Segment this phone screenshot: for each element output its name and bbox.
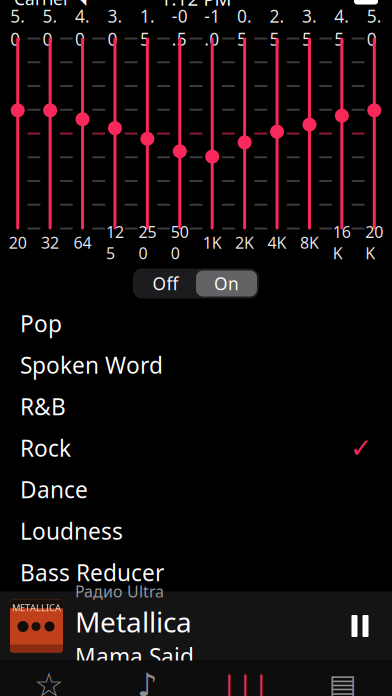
staticText: 250 bbox=[138, 221, 156, 264]
staticText: Радио Ultra bbox=[75, 581, 164, 602]
staticText: 8K bbox=[300, 232, 319, 253]
staticText: On bbox=[214, 272, 239, 295]
button[interactable]: Pop bbox=[0, 303, 392, 344]
staticText: 5.0 bbox=[43, 4, 58, 50]
staticText: 32 bbox=[41, 232, 59, 253]
staticText: ♪ bbox=[137, 667, 157, 696]
staticText: METALLICA bbox=[12, 601, 61, 614]
staticText: 16K bbox=[333, 221, 351, 264]
button[interactable]: Rock bbox=[0, 427, 392, 469]
staticText: 3.5 bbox=[302, 4, 317, 50]
button[interactable]: Stations bbox=[294, 660, 392, 696]
staticText: 64 bbox=[73, 232, 91, 253]
staticText: 3.0 bbox=[107, 4, 122, 50]
staticText: -0.5 bbox=[172, 4, 188, 50]
button[interactable]: METALLICA bbox=[0, 591, 392, 660]
button[interactable]: Favourites bbox=[0, 660, 98, 696]
button[interactable]: Spoken Word bbox=[0, 344, 392, 386]
staticText: 125 bbox=[106, 221, 124, 264]
staticText: Loudness bbox=[20, 516, 123, 546]
staticText: Rock bbox=[20, 433, 71, 463]
staticText: Pop bbox=[20, 308, 62, 338]
button[interactable]: R&B bbox=[0, 386, 392, 427]
staticText: 2K bbox=[235, 232, 254, 253]
button[interactable]: Off bbox=[135, 270, 196, 296]
staticText: 4.5 bbox=[334, 4, 349, 50]
staticText: ▤ bbox=[329, 668, 357, 696]
staticText: 500 bbox=[171, 221, 189, 264]
staticText: R&B bbox=[20, 391, 66, 421]
button[interactable]: Equalizer bbox=[196, 660, 294, 696]
button[interactable]: Loudness bbox=[0, 510, 392, 552]
button[interactable]: On bbox=[196, 270, 257, 296]
staticText: 20K bbox=[365, 221, 383, 264]
staticText: ☆ bbox=[34, 666, 64, 696]
staticText: 2.5 bbox=[269, 4, 284, 50]
staticText: Bass Reducer bbox=[20, 557, 164, 587]
staticText: -1.0 bbox=[204, 4, 220, 50]
staticText: ||| bbox=[221, 665, 269, 696]
staticText: Dance bbox=[20, 474, 88, 504]
staticText: Mama Said bbox=[75, 641, 194, 671]
staticText: 5.0 bbox=[367, 4, 382, 50]
staticText: Spoken Word bbox=[20, 350, 163, 380]
staticText: 1:12 PM bbox=[160, 0, 231, 11]
button[interactable]: Bass Reducer bbox=[0, 552, 392, 593]
staticText: 20 bbox=[9, 232, 27, 253]
staticText: 5.0 bbox=[10, 4, 25, 50]
staticText: 4.0 bbox=[75, 4, 90, 50]
button[interactable]: Dance bbox=[0, 469, 392, 510]
staticText: Carrier bbox=[14, 0, 70, 10]
button[interactable]: Playlist bbox=[98, 660, 196, 696]
staticText: 1.5 bbox=[140, 4, 155, 50]
staticText: ◥ bbox=[74, 0, 86, 8]
staticText: 0.5 bbox=[237, 4, 252, 50]
staticText: Metallica bbox=[75, 603, 192, 640]
staticText: ✓ bbox=[350, 433, 372, 463]
staticText: Off bbox=[152, 272, 178, 295]
staticText: 1K bbox=[203, 232, 222, 253]
staticText: 4K bbox=[267, 232, 286, 253]
